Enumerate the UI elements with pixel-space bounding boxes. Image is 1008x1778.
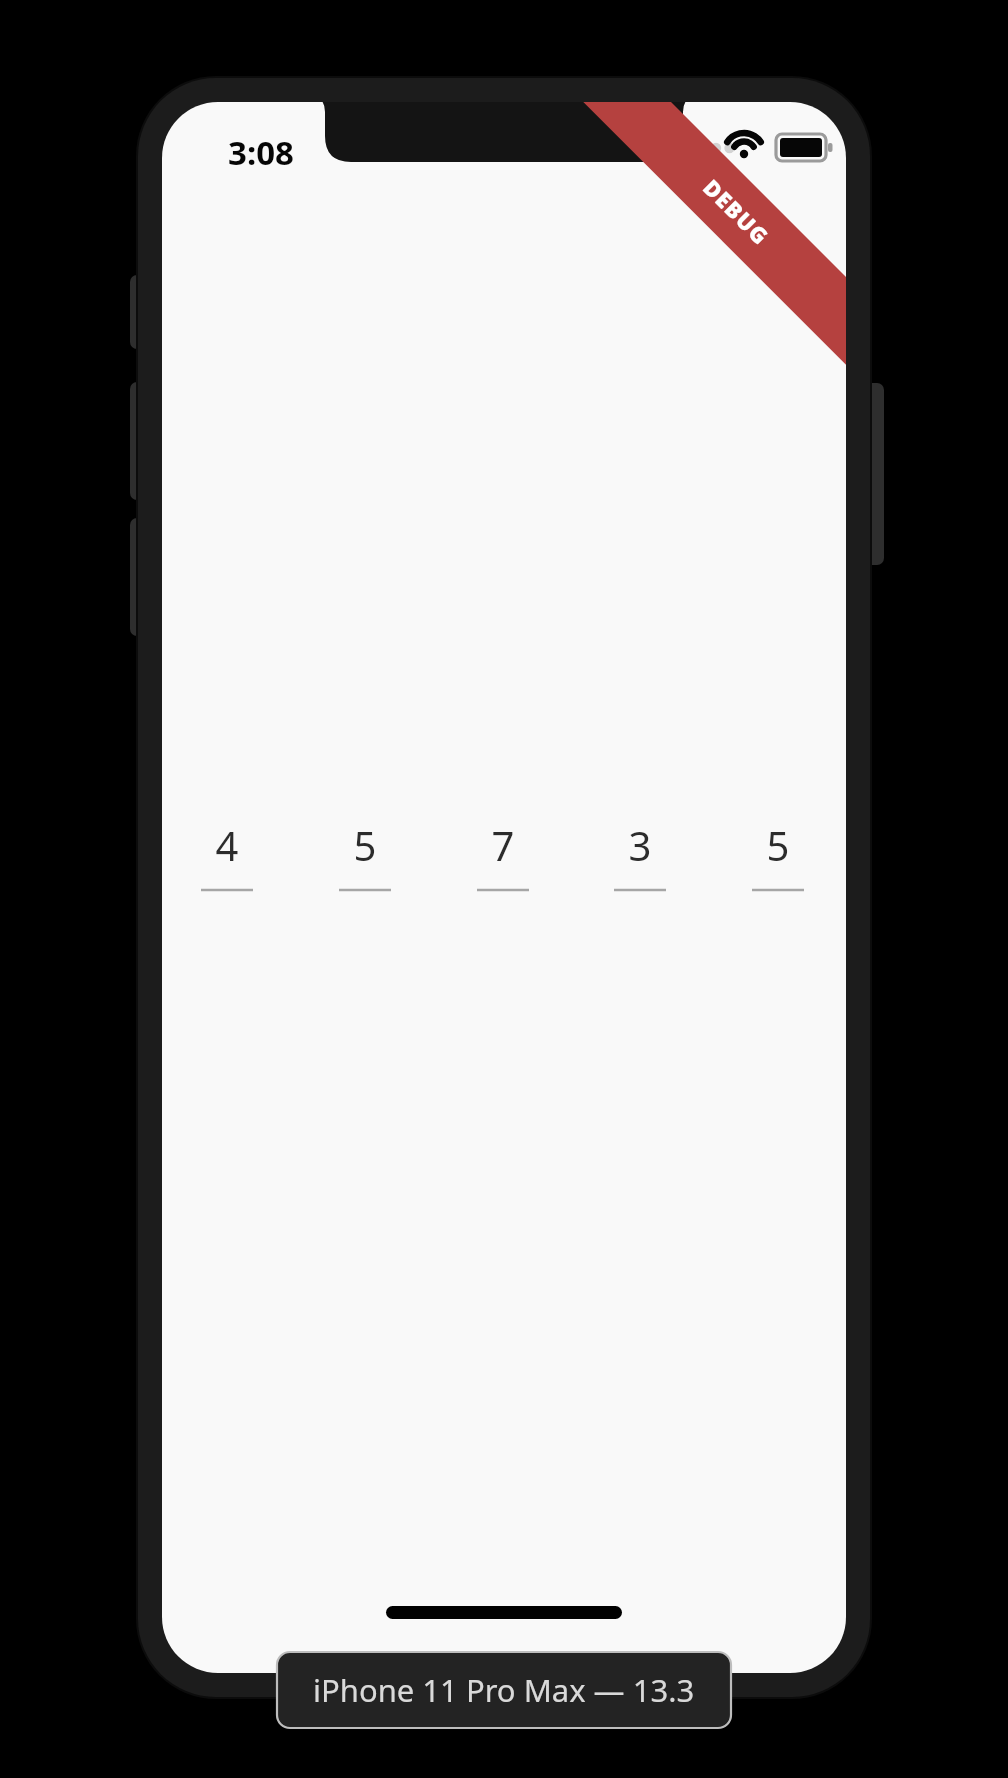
button[interactable]: iPhone 11 Pro Max simulator window [0, 0, 1008, 1778]
